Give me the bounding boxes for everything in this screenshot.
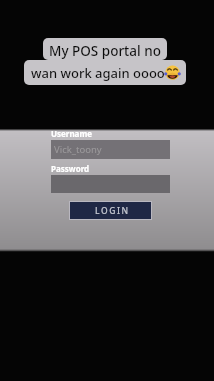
staticText: wan work again oooo bbox=[31, 64, 165, 82]
staticText: LOGIN bbox=[95, 205, 130, 217]
staticText: Username bbox=[51, 128, 92, 139]
other: Face with tears of joy bbox=[165, 65, 180, 80]
staticText: Vick_toony bbox=[54, 143, 102, 156]
button[interactable]: Vick_toony bbox=[51, 140, 170, 159]
staticText: My POS portal no bbox=[49, 42, 161, 60]
button[interactable]: LOGIN bbox=[70, 202, 151, 219]
staticText: Password bbox=[51, 163, 90, 174]
